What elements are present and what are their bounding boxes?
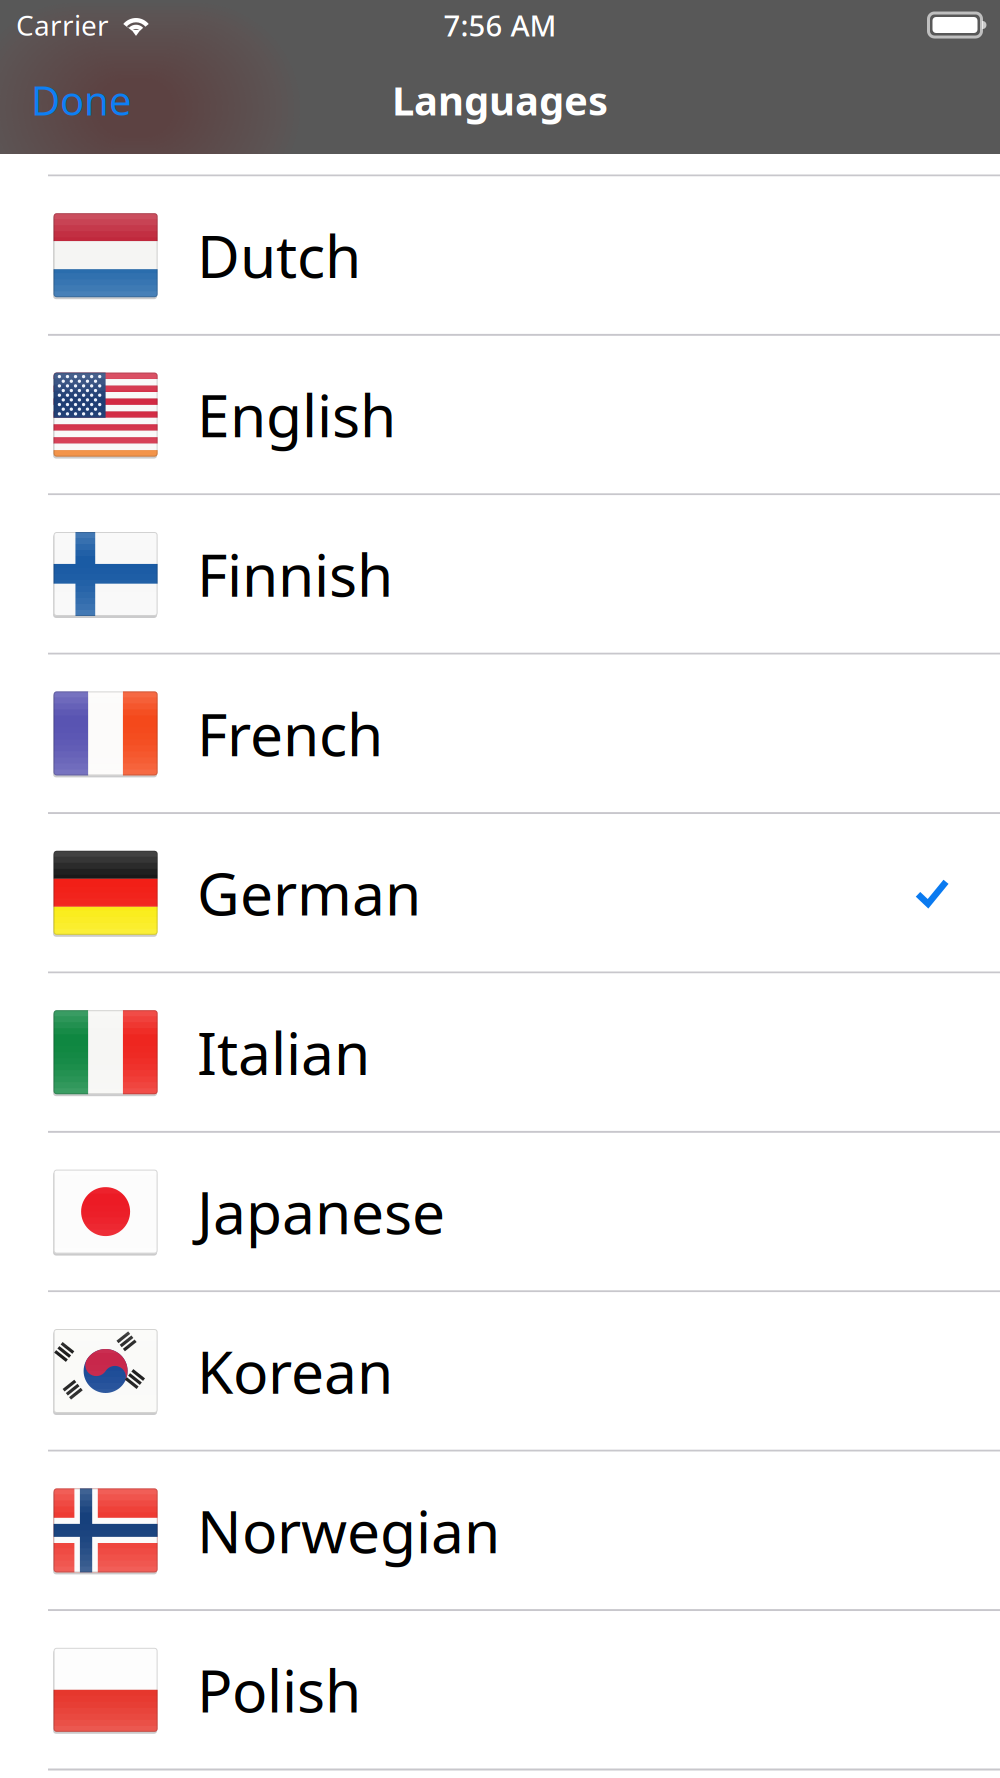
staticText: 7:56 AM xyxy=(443,5,556,44)
staticText: Finnish xyxy=(197,535,393,613)
staticText: Italian xyxy=(197,1013,370,1091)
button[interactable]: Finnish xyxy=(0,495,1000,655)
staticText: Dutch xyxy=(197,216,361,294)
button[interactable]: English xyxy=(0,336,1000,495)
staticText: Polish xyxy=(197,1651,361,1729)
staticText: Korean xyxy=(197,1332,393,1410)
staticText: Done xyxy=(31,73,132,126)
button[interactable]: Done xyxy=(0,59,152,144)
staticText: Carrier xyxy=(16,6,109,44)
staticText: English xyxy=(197,376,396,453)
staticText: French xyxy=(197,694,383,772)
button[interactable]: Norwegian xyxy=(0,1452,1000,1611)
button[interactable]: Japanese xyxy=(0,1133,1000,1292)
button[interactable]: Dutch xyxy=(0,176,1000,336)
button[interactable]: French xyxy=(0,655,1000,814)
button[interactable]: Italian xyxy=(0,973,1000,1133)
button[interactable]: German xyxy=(0,814,1000,973)
staticText: Norwegian xyxy=(197,1491,500,1569)
staticText: Languages xyxy=(392,73,608,126)
button[interactable]: Korean xyxy=(0,1292,1000,1452)
button[interactable]: Polish xyxy=(0,1611,1000,1770)
staticText: German xyxy=(197,854,421,932)
staticText: Japanese xyxy=(197,1173,445,1250)
